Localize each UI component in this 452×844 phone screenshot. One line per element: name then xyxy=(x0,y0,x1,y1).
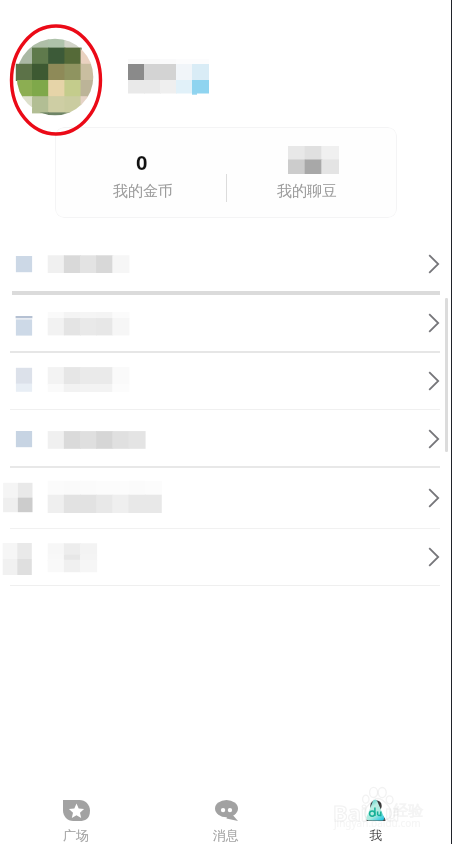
button[interactable]: Profile photo xyxy=(14,36,96,118)
button[interactable]: 我的订单 xyxy=(0,296,452,352)
button[interactable]: 关于 xyxy=(0,530,452,586)
button[interactable]: 设置 xyxy=(0,470,452,528)
staticText: jingyan.baidu.com xyxy=(334,816,421,830)
staticText: 广场 xyxy=(39,827,113,843)
staticText: 我 xyxy=(339,827,413,843)
button[interactable]: Nickname xyxy=(128,59,208,94)
button[interactable]: 我的钱包 xyxy=(0,353,452,410)
button[interactable]: 广场 xyxy=(39,790,113,844)
button[interactable]: 消息 xyxy=(189,790,263,844)
staticText: 0 xyxy=(136,149,148,176)
staticText: 经验 xyxy=(393,802,423,821)
button[interactable]: 我的收藏 xyxy=(0,235,452,293)
button[interactable]: 我 xyxy=(339,790,413,844)
button[interactable]: 我的聊豆 xyxy=(226,127,397,218)
staticText: 我的金币 xyxy=(113,182,173,201)
button[interactable]: 我的等级 xyxy=(0,411,452,467)
staticText: Bai xyxy=(333,797,368,827)
staticText: u xyxy=(385,797,400,827)
staticText: 消息 xyxy=(189,827,263,843)
button[interactable]: 我的金币 xyxy=(55,127,226,218)
staticText: 我的聊豆 xyxy=(277,182,337,201)
